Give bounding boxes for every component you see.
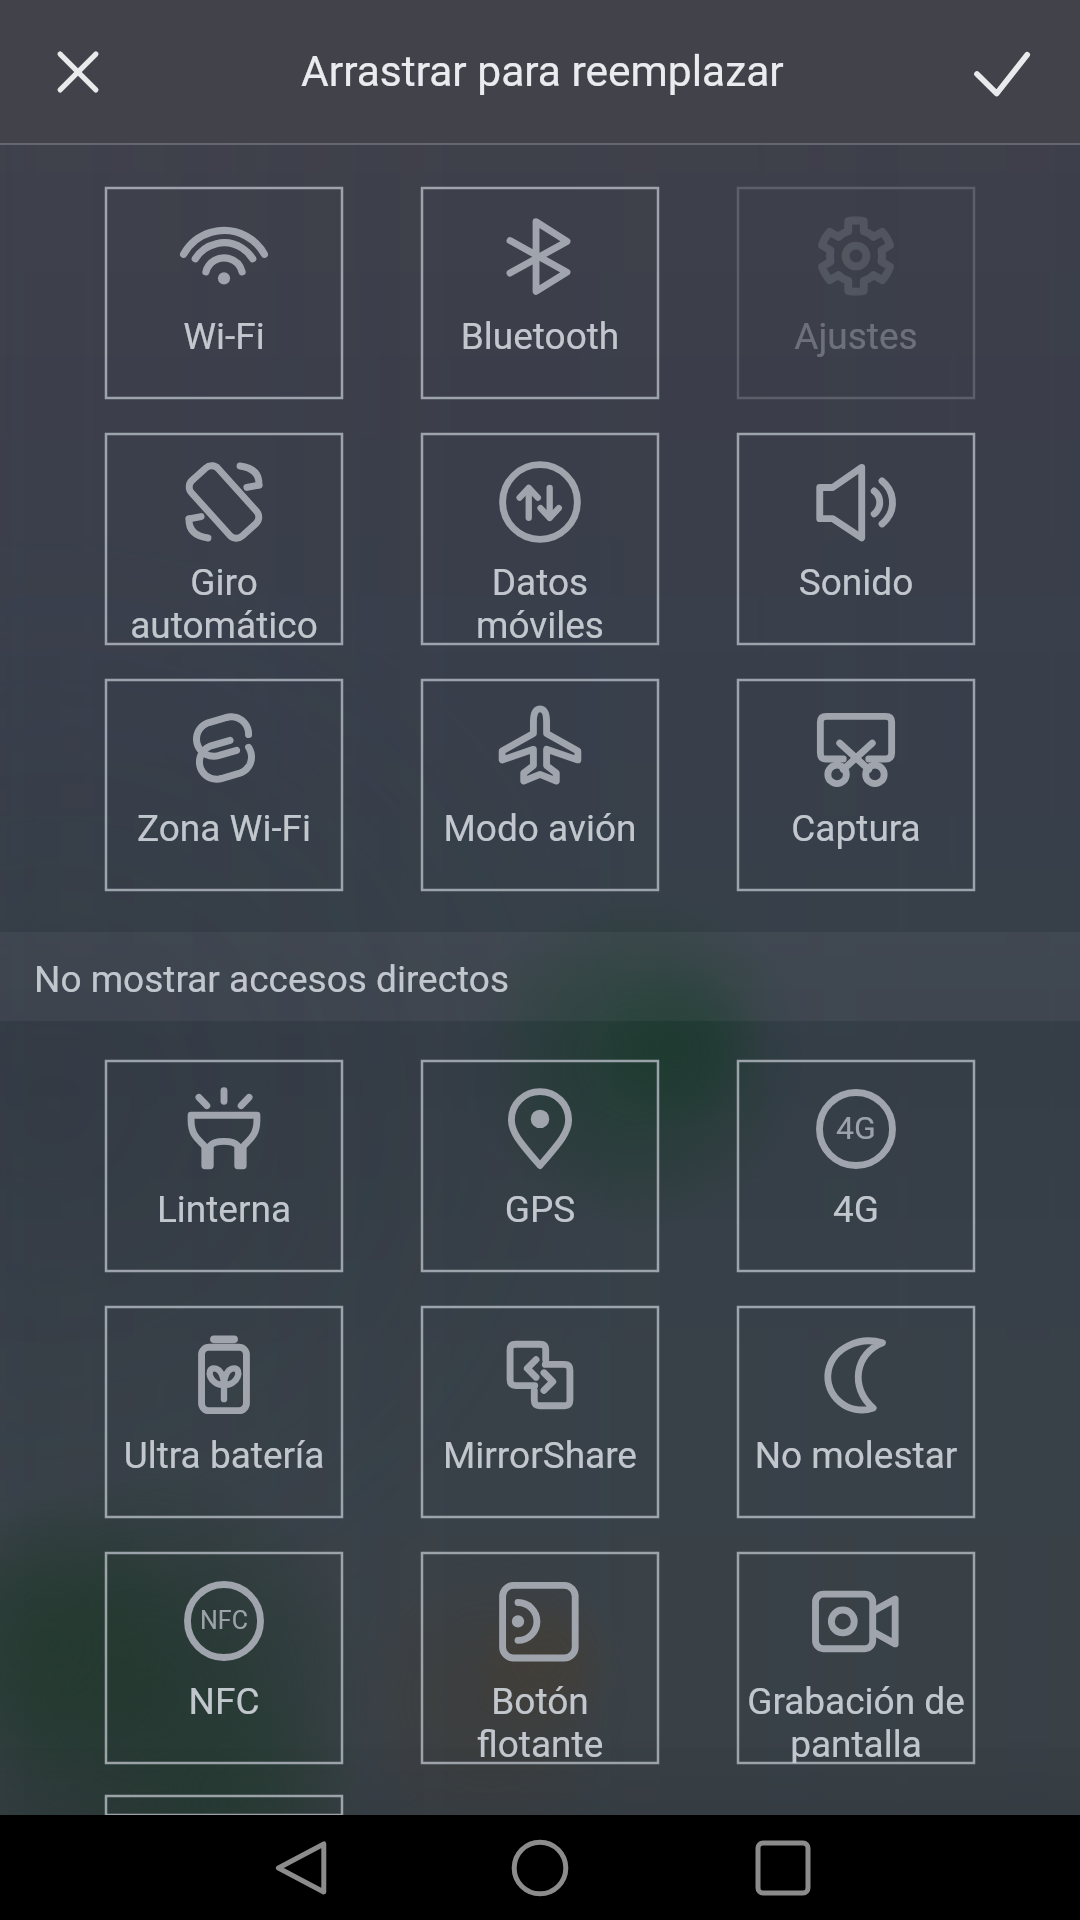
staticText: NFC — [94, 1680, 354, 1723]
staticText: Wi-Fi — [94, 315, 354, 358]
button[interactable]: Modo avión — [422, 680, 658, 890]
button[interactable]: Atrás — [240, 1815, 360, 1920]
staticText: Ultra batería — [94, 1434, 354, 1477]
staticText: Giro automático — [94, 561, 354, 644]
button[interactable]: No molestar — [738, 1307, 974, 1517]
staticText: 4G — [726, 1188, 986, 1231]
button[interactable] — [106, 1796, 342, 1815]
button[interactable]: Bluetooth — [422, 188, 658, 398]
staticText: 4G — [836, 1109, 876, 1147]
staticText: Grabación de pantalla — [726, 1680, 986, 1763]
button[interactable]: Sonido — [738, 434, 974, 644]
staticText: Bluetooth — [410, 315, 670, 358]
button[interactable]: Recientes — [720, 1815, 840, 1920]
staticText: Modo avión — [410, 807, 670, 850]
staticText: Captura — [726, 807, 986, 850]
button[interactable]: Inicio — [480, 1815, 600, 1920]
staticText: Botón flotante — [410, 1680, 670, 1763]
button[interactable]: Cerrar — [34, 28, 122, 116]
button[interactable]: Linterna — [106, 1061, 342, 1271]
staticText: Sonido — [726, 561, 986, 604]
staticText: No mostrar accesos directos — [34, 958, 510, 1001]
button[interactable]: Grabación de pantalla — [738, 1553, 974, 1763]
staticText: NFC — [200, 1606, 248, 1635]
button[interactable]: Captura — [738, 680, 974, 890]
button[interactable]: Giro automático — [106, 434, 342, 644]
staticText: Ajustes — [726, 315, 986, 358]
staticText: Arrastrar para reemplazar — [301, 47, 784, 97]
button[interactable]: 4G — [738, 1061, 974, 1271]
staticText: GPS — [410, 1188, 670, 1231]
staticText: MirrorShare — [410, 1434, 670, 1477]
button[interactable]: MirrorShare — [422, 1307, 658, 1517]
button[interactable]: Ultra batería — [106, 1307, 342, 1517]
button[interactable]: Ajustes — [738, 188, 974, 398]
staticText: Zona Wi-Fi — [94, 807, 354, 850]
button[interactable]: Wi-Fi — [106, 188, 342, 398]
staticText: Linterna — [94, 1188, 354, 1231]
button[interactable]: Botón flotante — [422, 1553, 658, 1763]
button[interactable]: NFC — [106, 1553, 342, 1763]
button[interactable]: GPS — [422, 1061, 658, 1271]
button[interactable]: Datos móviles — [422, 434, 658, 644]
button[interactable]: Confirmar — [958, 28, 1046, 116]
button[interactable]: Zona Wi-Fi — [106, 680, 342, 890]
staticText: Datos móviles — [410, 561, 670, 644]
staticText: No molestar — [726, 1434, 986, 1477]
